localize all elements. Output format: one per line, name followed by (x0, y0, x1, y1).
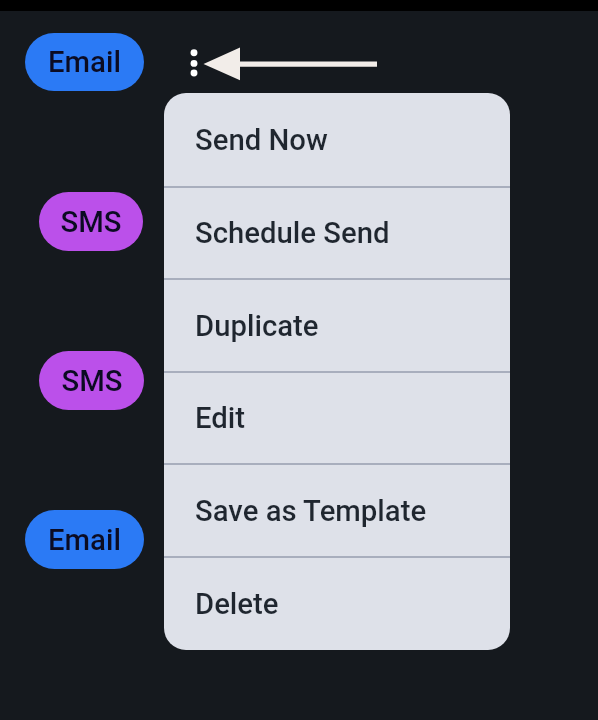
button[interactable]: Send Now (164, 93, 510, 187)
button[interactable]: SMS (39, 192, 143, 251)
staticText: Save as Template (195, 494, 427, 528)
staticText: Duplicate (195, 309, 319, 343)
button[interactable]: Duplicate (164, 279, 510, 372)
staticText: Delete (195, 587, 279, 621)
button[interactable]: More options (184, 42, 204, 84)
staticText: Schedule Send (195, 216, 390, 250)
staticText: SMS (61, 364, 123, 398)
button[interactable]: Email (25, 510, 144, 569)
button[interactable]: Edit (164, 372, 510, 464)
button[interactable]: Schedule Send (164, 187, 510, 279)
staticText: Email (48, 523, 121, 557)
staticText: Edit (195, 401, 246, 435)
staticText: Send Now (195, 123, 328, 157)
button[interactable]: Delete (164, 557, 510, 650)
button[interactable]: Save as Template (164, 464, 510, 557)
staticText: Email (48, 45, 121, 79)
button[interactable]: SMS (39, 351, 144, 410)
button[interactable]: Email (25, 33, 144, 91)
staticText: SMS (60, 205, 122, 239)
